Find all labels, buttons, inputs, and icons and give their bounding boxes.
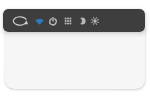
button[interactable]: Auto rotate [12,13,28,29]
button[interactable]: Do not disturb [77,16,87,26]
button[interactable]: Wi-Fi [35,17,44,26]
button[interactable]: Power [48,16,58,26]
button[interactable]: Brightness [90,16,100,26]
button[interactable]: Screen cast [63,16,73,26]
